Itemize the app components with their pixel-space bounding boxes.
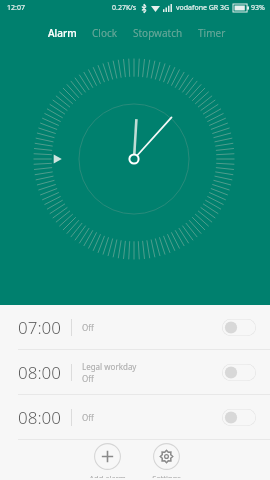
staticText: Off	[82, 373, 94, 384]
button[interactable]: Settings	[146, 441, 187, 480]
staticText: Off	[82, 412, 94, 423]
staticText: Timer	[198, 26, 226, 40]
staticText: Off	[82, 322, 94, 333]
staticText: 0.27K/s	[112, 3, 137, 13]
staticText: Settings	[152, 473, 181, 478]
staticText: 12:07	[7, 3, 25, 13]
staticText: Clock	[92, 26, 118, 40]
staticText: 08:00	[18, 361, 61, 384]
staticText: 08:00	[18, 406, 61, 429]
button[interactable]: Stopwatch	[133, 23, 183, 43]
staticText: Stopwatch	[133, 26, 183, 40]
staticText: 93%	[251, 3, 265, 13]
button[interactable]: Alarm	[48, 23, 77, 43]
button[interactable]: Alarm toggle	[222, 364, 256, 381]
staticText: vodafone GR 3G	[176, 3, 230, 13]
button[interactable]: Alarm toggle	[222, 409, 256, 426]
staticText: Alarm	[48, 26, 77, 40]
button[interactable]: 07:00	[0, 305, 270, 349]
button[interactable]: Add alarm	[83, 441, 132, 480]
staticText: Legal workday	[82, 361, 137, 372]
staticText: 07:00	[18, 316, 61, 339]
button[interactable]: 08:00	[0, 395, 270, 439]
button[interactable]: 08:00	[0, 350, 270, 394]
staticText: Add alarm	[89, 473, 126, 478]
button[interactable]: Timer	[198, 23, 226, 43]
button[interactable]: Alarm toggle	[222, 319, 256, 336]
button[interactable]: Clock	[92, 23, 118, 43]
